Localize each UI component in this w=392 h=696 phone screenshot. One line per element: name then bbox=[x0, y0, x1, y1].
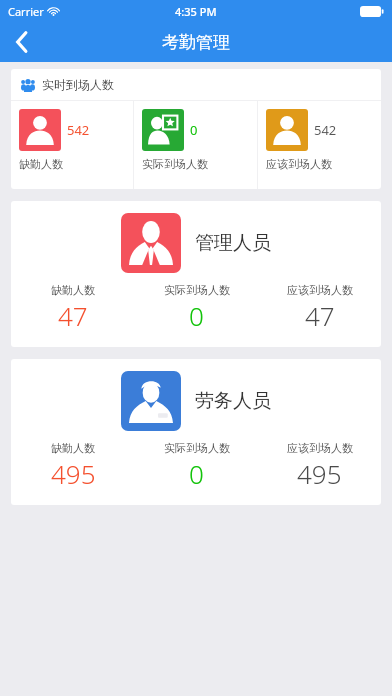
staticText: 495 bbox=[51, 456, 96, 491]
button[interactable]: 542 bbox=[258, 101, 381, 171]
staticText: 0 bbox=[189, 298, 204, 333]
staticText: 实际到场人数 bbox=[142, 157, 208, 171]
staticText: 0 bbox=[189, 456, 204, 491]
staticText: 缺勤人数 bbox=[51, 283, 95, 297]
staticText: 缺勤人数 bbox=[51, 441, 95, 455]
staticText: 495 bbox=[297, 456, 342, 491]
staticText: 应该到场人数 bbox=[287, 283, 353, 297]
staticText: 实时到场人数 bbox=[42, 77, 114, 92]
staticText: 应该到场人数 bbox=[287, 441, 353, 455]
button[interactable]: 0 bbox=[134, 101, 257, 171]
staticText: 0 bbox=[190, 121, 198, 139]
button[interactable]: 管理人员 bbox=[11, 201, 381, 347]
button[interactable]: 缺勤人数 bbox=[11, 441, 135, 491]
staticText: 考勤管理 bbox=[162, 32, 230, 53]
button[interactable]: 缺勤人数 bbox=[11, 283, 135, 333]
staticText: 4:35 PM bbox=[175, 4, 217, 19]
staticText: Carrier bbox=[8, 4, 44, 19]
staticText: 缺勤人数 bbox=[19, 157, 63, 171]
staticText: 47 bbox=[58, 298, 88, 333]
button[interactable]: 实际到场人数 bbox=[135, 283, 258, 333]
staticText: 542 bbox=[314, 121, 337, 139]
staticText: 应该到场人数 bbox=[266, 157, 332, 171]
staticText: 542 bbox=[67, 121, 90, 139]
button[interactable]: 实际到场人数 bbox=[135, 441, 258, 491]
button[interactable]: 劳务人员 bbox=[11, 359, 381, 505]
staticText: 实际到场人数 bbox=[164, 283, 230, 297]
staticText: 劳务人员 bbox=[195, 389, 271, 413]
button[interactable]: 实时到场人数 bbox=[11, 69, 381, 189]
button[interactable]: 应该到场人数 bbox=[258, 283, 381, 333]
staticText: 47 bbox=[305, 298, 335, 333]
staticText: 实际到场人数 bbox=[164, 441, 230, 455]
button[interactable]: Back bbox=[0, 22, 44, 62]
button[interactable]: 应该到场人数 bbox=[258, 441, 381, 491]
staticText: 管理人员 bbox=[195, 231, 271, 255]
button[interactable]: 542 bbox=[11, 101, 133, 171]
